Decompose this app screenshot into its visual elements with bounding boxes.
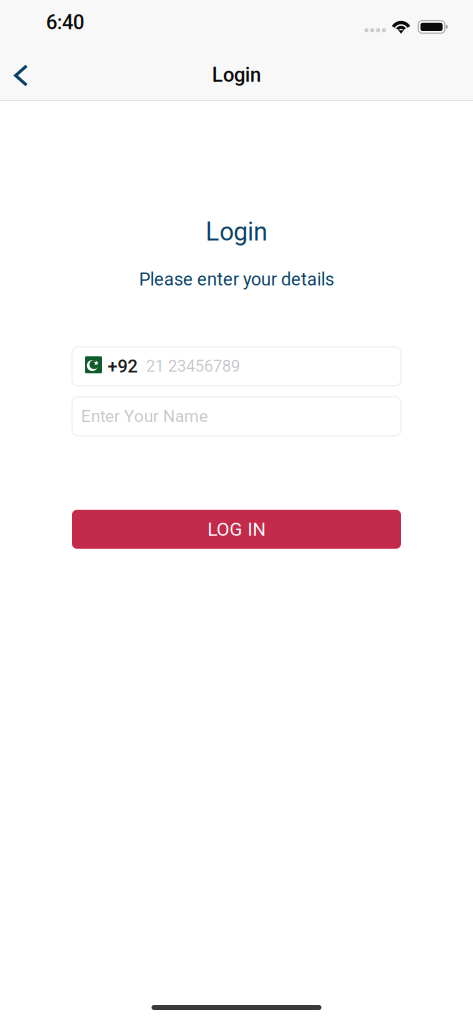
button[interactable]: Back [0, 51, 44, 96]
staticText: Login [212, 63, 261, 87]
staticText: +92 [107, 356, 137, 377]
staticText: LOG IN [207, 518, 265, 540]
button[interactable]: LOG IN [72, 510, 401, 549]
staticText: Please enter your details [139, 269, 334, 290]
button[interactable]: +92 [72, 347, 401, 386]
staticText: 6:40 [46, 11, 84, 34]
staticText: 21 23456789 [146, 357, 240, 376]
staticText: Enter Your Name [81, 406, 208, 426]
button[interactable]: Enter Your Name [72, 397, 401, 436]
staticText: Login [205, 217, 267, 247]
